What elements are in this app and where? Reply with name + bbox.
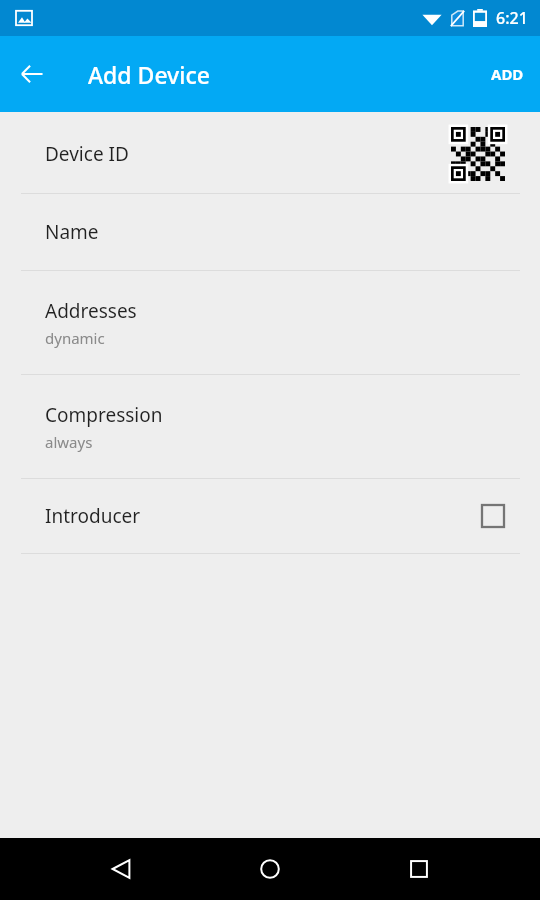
button[interactable]: Introducer <box>0 479 540 553</box>
other: Introducer checkbox <box>481 504 505 528</box>
staticText: Device ID <box>45 141 129 167</box>
staticText: Add Device <box>88 59 210 90</box>
button[interactable]: Back <box>93 841 149 897</box>
button[interactable]: Name <box>0 194 540 270</box>
button[interactable]: Recent apps <box>391 841 447 897</box>
button[interactable]: Compression <box>0 375 540 478</box>
staticText: Addresses <box>45 298 137 324</box>
staticText: Compression <box>45 402 163 428</box>
staticText: ADD <box>491 64 524 84</box>
button[interactable]: Home <box>242 841 298 897</box>
button[interactable]: Back <box>8 50 56 98</box>
staticText: Introducer <box>45 503 141 529</box>
staticText: always <box>45 432 93 452</box>
button[interactable]: Device ID <box>0 115 540 193</box>
button[interactable]: Addresses <box>0 271 540 374</box>
button[interactable]: ADD <box>475 46 540 102</box>
staticText: 6:21 <box>496 7 528 29</box>
staticText: Name <box>45 219 99 245</box>
other: Scan QR code <box>451 127 505 181</box>
staticText: 93 <box>475 11 485 22</box>
staticText: dynamic <box>45 328 105 348</box>
